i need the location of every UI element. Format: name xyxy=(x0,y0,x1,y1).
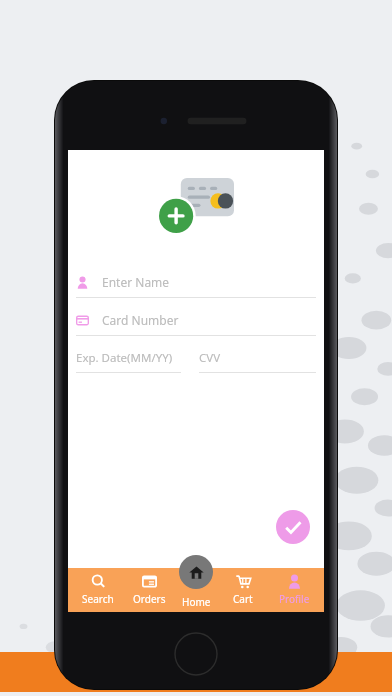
button[interactable]: Enter Name xyxy=(76,274,316,298)
staticText: Cart xyxy=(233,592,253,606)
staticText: Exp. Date(MM/YY) xyxy=(76,350,173,366)
button[interactable]: Home xyxy=(182,595,211,609)
staticText: Enter Name xyxy=(102,274,170,290)
button[interactable]: Card Number xyxy=(76,312,316,336)
staticText: Orders xyxy=(133,592,166,606)
staticText: CVV xyxy=(199,350,221,366)
staticText: Profile xyxy=(279,592,310,606)
button[interactable]: Confirm xyxy=(276,510,310,544)
staticText: Search xyxy=(82,592,114,606)
button[interactable]: Search xyxy=(76,574,120,606)
button[interactable]: Exp. Date(MM/YY) xyxy=(76,350,193,373)
staticText: Home xyxy=(182,595,211,609)
button[interactable]: Orders xyxy=(127,574,171,606)
button[interactable]: Cart xyxy=(221,574,265,606)
staticText: Card Number xyxy=(102,312,179,328)
button[interactable]: CVV xyxy=(199,350,316,373)
button[interactable]: Profile xyxy=(272,574,316,606)
button[interactable]: Home xyxy=(179,555,213,589)
